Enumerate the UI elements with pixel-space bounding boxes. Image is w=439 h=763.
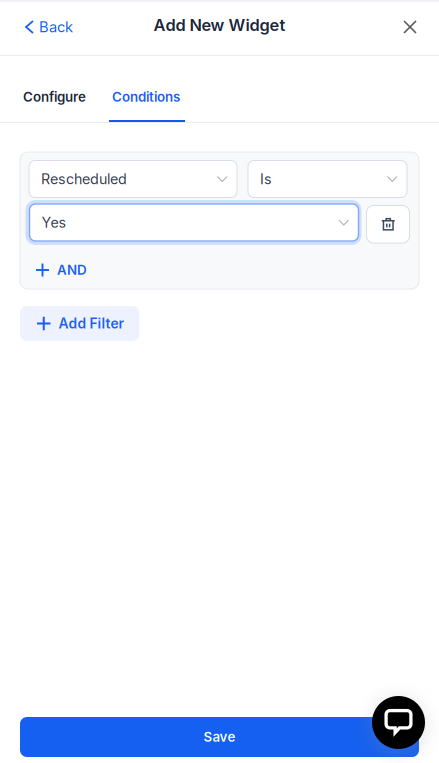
button[interactable]: Conditions bbox=[97, 64, 192, 130]
staticText: Back bbox=[39, 18, 73, 36]
staticText: AND bbox=[57, 262, 87, 278]
staticText: Conditions bbox=[112, 89, 180, 105]
staticText: Rescheduled bbox=[41, 170, 127, 188]
button[interactable]: Open chat bbox=[372, 696, 425, 749]
button[interactable]: Add Filter bbox=[20, 306, 139, 341]
staticText: Yes bbox=[41, 214, 66, 231]
button[interactable]: Back bbox=[16, 5, 83, 49]
button[interactable]: Configure bbox=[12, 64, 97, 130]
staticText: Add Filter bbox=[58, 315, 123, 332]
button[interactable]: Save bbox=[20, 717, 419, 757]
button[interactable]: Delete condition bbox=[366, 205, 409, 243]
button[interactable]: Close bbox=[388, 5, 432, 49]
button[interactable]: Yes bbox=[29, 204, 358, 241]
button[interactable]: Rescheduled bbox=[29, 160, 237, 197]
button[interactable]: AND bbox=[36, 257, 87, 283]
staticText: Configure bbox=[23, 89, 86, 105]
staticText: Is bbox=[260, 170, 272, 188]
button[interactable]: Is bbox=[248, 160, 407, 197]
staticText: Save bbox=[203, 729, 235, 745]
staticText: Add New Widget bbox=[153, 15, 285, 35]
